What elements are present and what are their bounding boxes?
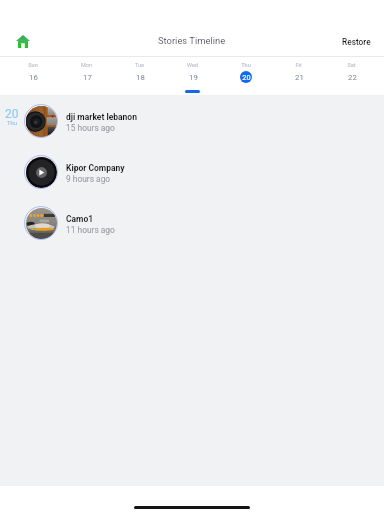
staticText: Mon (81, 62, 92, 68)
staticText: 20 (242, 73, 251, 82)
staticText: Thu (241, 62, 251, 68)
button[interactable]: Thu (219, 57, 272, 95)
staticText: 18 (136, 73, 145, 82)
staticText: Fri (295, 62, 302, 68)
staticText: 17 (83, 73, 92, 82)
button[interactable]: Camo1 (0, 203, 384, 254)
staticText: 9 hours ago (66, 174, 111, 184)
button[interactable]: Wed (166, 57, 219, 95)
staticText: Wed (187, 62, 198, 68)
staticText: 22 (348, 73, 357, 82)
staticText: Camo1 (66, 214, 94, 224)
staticText: 15 hours ago (66, 123, 115, 133)
staticText: 21 (295, 73, 304, 82)
staticText: Stories Timeline (158, 35, 226, 46)
staticText: Tue (135, 62, 144, 68)
staticText: 19 (189, 73, 198, 82)
button[interactable]: Mon (60, 57, 113, 95)
button[interactable]: Sun (6, 57, 60, 95)
staticText: 16 (29, 73, 38, 82)
button[interactable]: Tue (113, 57, 166, 95)
staticText: dji market lebanon (66, 112, 137, 122)
button[interactable]: Sat (325, 57, 378, 95)
staticText: Thu (7, 119, 18, 126)
button[interactable]: Home gesture bar (134, 506, 250, 509)
staticText: Kipor Company (66, 163, 125, 173)
staticText: Sat (347, 62, 356, 68)
staticText: Sun (28, 62, 38, 68)
staticText: 20 (5, 107, 19, 121)
staticText: Restore (342, 37, 371, 47)
button[interactable]: 20 (0, 101, 384, 152)
button[interactable]: Fri (272, 57, 325, 95)
staticText: 11 hours ago (66, 225, 115, 235)
button[interactable]: Restore (337, 33, 376, 51)
button[interactable]: Kipor Company (0, 152, 384, 203)
button[interactable]: Home (11, 29, 35, 53)
